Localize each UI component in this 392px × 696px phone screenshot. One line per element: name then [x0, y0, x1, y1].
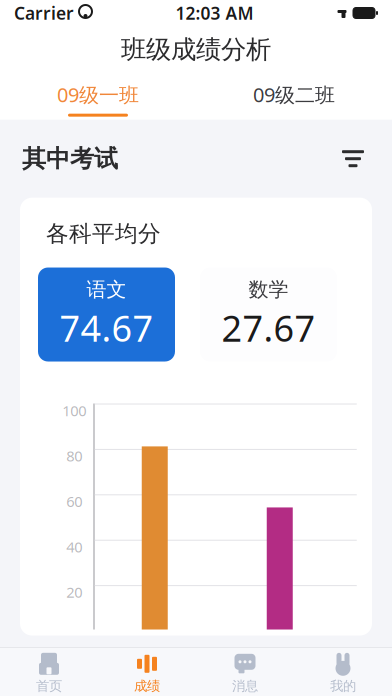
button[interactable]: 语文: [38, 267, 175, 361]
button[interactable]: 首页: [0, 646, 98, 696]
button[interactable]: 成绩: [98, 646, 196, 696]
staticText: 消息: [232, 678, 258, 694]
staticText: 数学: [248, 277, 288, 302]
staticText: 100: [62, 401, 86, 420]
staticText: 60: [66, 492, 82, 511]
button[interactable]: 消息: [196, 646, 294, 696]
button[interactable]: 我的: [294, 646, 392, 696]
staticText: 09级一班: [57, 81, 139, 108]
staticText: 其中考试: [22, 144, 118, 173]
staticText: 首页: [36, 678, 62, 694]
staticText: Carrier: [14, 1, 74, 24]
staticText: 我的: [330, 678, 356, 694]
staticText: 班级成绩分析: [121, 34, 271, 65]
button[interactable]: 数学: [200, 267, 337, 361]
staticText: 各科平均分: [46, 220, 161, 247]
staticText: 成绩: [134, 678, 160, 694]
staticText: 09级二班: [253, 81, 335, 108]
staticText: 74.67: [59, 304, 153, 352]
staticText: 27.67: [221, 304, 315, 352]
button[interactable]: 筛选: [336, 142, 370, 176]
button[interactable]: 09级二班: [196, 71, 392, 117]
staticText: 40: [66, 537, 82, 556]
staticText: 语文: [86, 277, 126, 302]
staticText: 80: [66, 446, 82, 466]
button[interactable]: 09级一班: [0, 71, 196, 117]
staticText: 20: [66, 582, 82, 602]
staticText: 12:03 AM: [175, 1, 253, 24]
